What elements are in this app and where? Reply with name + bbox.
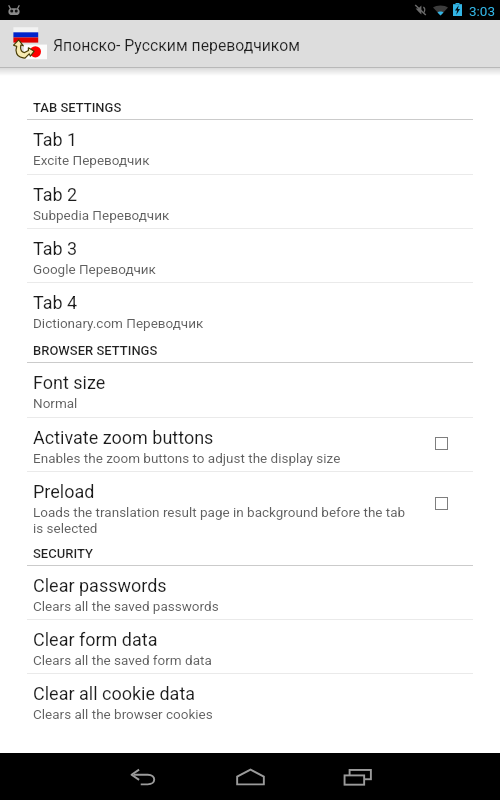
staticText: Tab 1	[33, 129, 78, 150]
button[interactable]: Back	[92, 753, 197, 800]
staticText: Subpedia Переводчик	[33, 207, 170, 223]
button[interactable]: Clear passwords	[0, 566, 500, 620]
staticText: Loads the translation result page in bac…	[33, 504, 413, 536]
staticText: Enables the zoom buttons to adjust the d…	[33, 450, 341, 466]
staticText: Dictionary.com Переводчик	[33, 315, 204, 331]
staticText: Tab 2	[33, 184, 78, 205]
staticText: Normal	[33, 395, 78, 411]
staticText: Preload	[33, 481, 95, 502]
button[interactable]: Preload	[0, 472, 500, 539]
staticText: Clears all the saved form data	[33, 652, 212, 668]
button[interactable]: Tab 1	[0, 120, 500, 175]
button[interactable]: Tab 4	[0, 283, 500, 337]
button[interactable]: Tab 3	[0, 229, 500, 283]
staticText: 3:03	[469, 3, 496, 19]
staticText: SECURITY	[33, 546, 93, 561]
button[interactable]: Tab 2	[0, 175, 500, 229]
staticText: Font size	[33, 372, 106, 393]
button[interactable]: Font size	[0, 363, 500, 418]
button[interactable]: Activate zoom buttons	[0, 418, 500, 472]
staticText: Excite Переводчик	[33, 152, 150, 168]
staticText: Clears all the browser cookies	[33, 706, 213, 722]
staticText: Clear form data	[33, 629, 158, 650]
staticText: Tab 3	[33, 238, 78, 259]
staticText: Clear all cookie data	[33, 683, 196, 704]
staticText: Activate zoom buttons	[33, 427, 214, 448]
button[interactable]: Clear form data	[0, 620, 500, 674]
staticText: Google Переводчик	[33, 261, 156, 277]
button[interactable]: Clear all cookie data	[0, 674, 500, 728]
staticText: Clears all the saved passwords	[33, 598, 219, 614]
staticText: Японско- Русским переводчиком	[53, 36, 300, 55]
staticText: TAB SETTINGS	[33, 100, 122, 115]
button[interactable]: Home	[198, 753, 303, 800]
staticText: Tab 4	[33, 292, 78, 313]
staticText: Clear passwords	[33, 575, 167, 596]
staticText: BROWSER SETTINGS	[33, 343, 158, 358]
button[interactable]: Recent apps	[305, 753, 410, 800]
